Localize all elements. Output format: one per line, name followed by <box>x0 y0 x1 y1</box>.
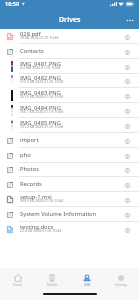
staticText: Settings <box>115 283 128 287</box>
button[interactable]: Info <box>122 75 133 87</box>
staticText: Mobile <box>47 283 58 287</box>
button[interactable]: Info <box>122 31 133 43</box>
button[interactable]: Records <box>0 177 139 192</box>
button[interactable]: Info <box>122 209 133 221</box>
button[interactable]: testing.docx <box>0 222 139 237</box>
button[interactable]: Info <box>122 194 133 206</box>
button[interactable]: Info <box>122 61 133 73</box>
staticText: 4.4 MB 2020-01-05 10:58 <box>20 65 61 70</box>
staticText: 78 KB 2020-01-05 10:44 <box>20 35 59 40</box>
staticText: System Volume Information <box>20 210 97 218</box>
button[interactable]: Info <box>122 135 133 147</box>
staticText: USB <box>84 283 91 287</box>
button[interactable]: More options <box>124 14 136 26</box>
button[interactable]: 028.pdf <box>0 29 139 44</box>
staticText: 22.4 KB 2020-01-05 10:44 <box>20 228 62 233</box>
staticText: 350.1 KB 2020-01-05 10:58 <box>20 109 64 114</box>
staticText: setup-1.msi <box>20 193 52 201</box>
button[interactable]: pho <box>0 148 139 163</box>
button[interactable]: Contacts <box>0 44 139 59</box>
staticText: Contacts <box>20 47 44 55</box>
button[interactable]: IMG_0484.PNG <box>0 103 139 118</box>
button[interactable]: Settings <box>105 268 137 292</box>
staticText: 515.9 KB 2020-01-05 10:58 <box>20 79 64 84</box>
button[interactable]: USB <box>71 268 103 292</box>
staticText: Drives <box>59 15 81 25</box>
staticText: Records <box>20 180 42 188</box>
staticText: 10:59 <box>5 0 20 7</box>
staticText: IMG_0483.PNG <box>20 89 61 97</box>
staticText: IMG_0484.PNG <box>20 104 61 112</box>
button[interactable]: IMG_0485.PNG <box>0 118 139 133</box>
staticText: IMG_0481.PNG <box>20 60 61 68</box>
button[interactable]: Info <box>122 164 133 176</box>
staticText: IMG_0482.PNG <box>20 74 61 82</box>
staticText: IMG_0485.PNG <box>20 119 61 127</box>
button[interactable]: Info <box>122 150 133 162</box>
button[interactable]: Info <box>122 179 133 191</box>
button[interactable]: import <box>0 133 139 148</box>
button[interactable]: Photos <box>0 162 139 177</box>
button[interactable]: Home <box>2 268 34 292</box>
staticText: 391.2 KB 2020-01-05 10:58 <box>20 124 64 129</box>
button[interactable]: Info <box>122 46 133 58</box>
button[interactable]: IMG_0483.PNG <box>0 88 139 103</box>
button[interactable]: System Volume Information <box>0 207 139 222</box>
staticText: Photos <box>20 165 39 173</box>
button[interactable]: Info <box>122 120 133 132</box>
button[interactable]: Info <box>122 90 133 102</box>
staticText: 900.9 KB 2020-01-05 10:44 <box>20 198 64 203</box>
button[interactable]: IMG_0482.PNG <box>0 73 139 88</box>
staticText: testing.docx <box>20 223 54 231</box>
staticText: 351.6 KB 2020-01-05 10:58 <box>20 94 64 99</box>
staticText: import <box>20 136 39 144</box>
button[interactable]: Mobile <box>36 268 68 292</box>
button[interactable]: Info <box>122 224 133 236</box>
staticText: Home <box>13 283 23 287</box>
staticText: pho <box>20 151 31 159</box>
button[interactable]: IMG_0481.PNG <box>0 59 139 74</box>
staticText: 028.pdf <box>20 30 41 38</box>
button[interactable]: setup-1.msi <box>0 192 139 207</box>
button[interactable]: Info <box>122 105 133 117</box>
